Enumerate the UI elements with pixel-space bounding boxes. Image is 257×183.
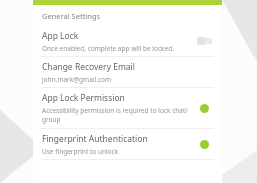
button[interactable]: App Lock [33, 26, 222, 56]
staticText: Use fingerprint to unlock [42, 147, 119, 156]
button[interactable]: Change Recovery Email [33, 57, 222, 87]
staticText: General Settings [42, 11, 101, 21]
staticText: Fingerprint Authentication [42, 133, 148, 145]
button[interactable]: Disabled, toggle on [194, 33, 214, 49]
staticText: Once enabled, complete app will be locke… [42, 44, 174, 53]
staticText: App Lock [42, 30, 79, 42]
staticText: john.mark@gmail.com [42, 75, 112, 84]
staticText: App Lock Permission [42, 92, 125, 104]
button[interactable]: App Lock Permission [33, 88, 222, 128]
staticText: Change Recovery Email [42, 61, 136, 73]
staticText: Accessibility permission is required to … [42, 106, 188, 124]
button[interactable]: Enabled, toggle off [194, 100, 214, 116]
button[interactable]: Fingerprint Authentication [33, 129, 222, 159]
button[interactable]: Enabled, toggle off [194, 136, 214, 152]
